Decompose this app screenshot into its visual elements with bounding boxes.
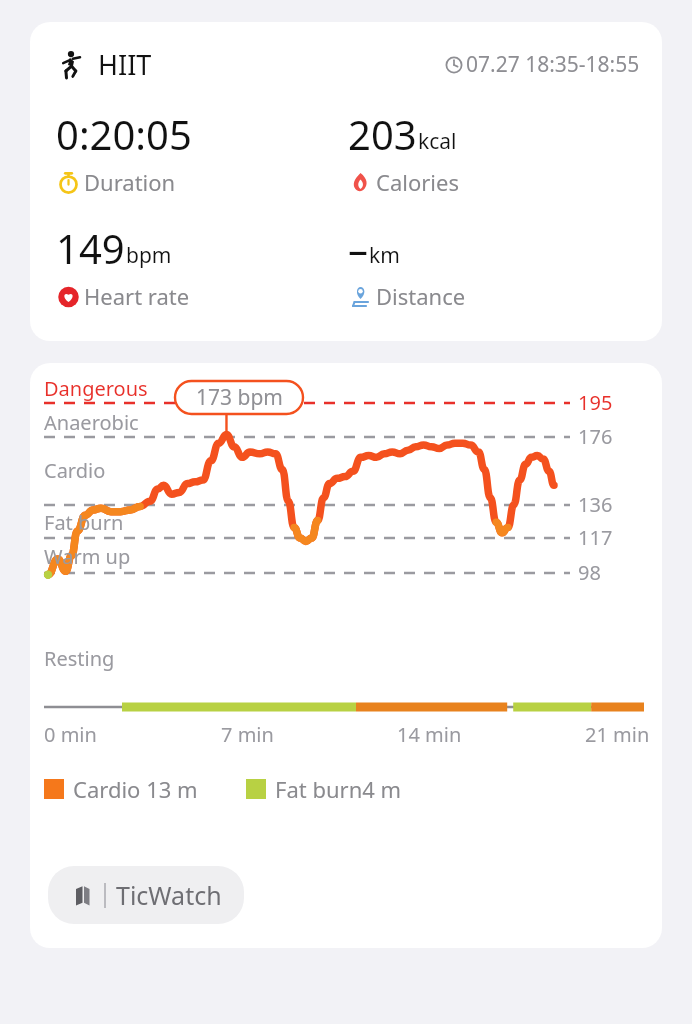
staticText: Calories — [376, 167, 459, 197]
staticText: 21 min — [585, 721, 650, 748]
staticText: Dangerous — [44, 375, 148, 402]
staticText: Distance — [376, 281, 466, 311]
staticText: 173 bpm — [196, 383, 283, 412]
staticText: 7 min — [221, 721, 274, 748]
staticText: kcal — [418, 127, 457, 156]
staticText: HIIT — [98, 46, 152, 83]
staticText: 195 — [578, 389, 613, 416]
staticText: Duration — [84, 167, 176, 197]
staticText: 0:20:05 — [56, 107, 192, 161]
button[interactable]: TicWatch — [48, 866, 244, 924]
staticText: – — [348, 221, 368, 275]
other: Workout type — [56, 50, 86, 80]
staticText: Anaerobic — [44, 409, 139, 436]
staticText: Fat burn — [44, 509, 124, 536]
staticText: 07.27 18:35-18:55 — [466, 50, 640, 79]
staticText: Fat burn4 m — [275, 774, 402, 804]
staticText: bpm — [126, 241, 172, 270]
staticText: 176 — [578, 423, 613, 450]
staticText: TicWatch — [116, 878, 222, 912]
staticText: 117 — [578, 524, 613, 551]
staticText: Heart rate — [84, 281, 190, 311]
staticText: 149 — [56, 221, 125, 275]
staticText: 0 min — [44, 721, 97, 748]
staticText: Cardio — [44, 457, 106, 484]
staticText: Warm up — [44, 543, 131, 570]
staticText: 136 — [578, 491, 613, 518]
staticText: 98 — [578, 559, 601, 586]
button[interactable]: Workout type — [30, 22, 662, 341]
staticText: Resting — [44, 645, 115, 672]
staticText: 14 min — [397, 721, 462, 748]
staticText: km — [369, 241, 400, 270]
staticText: 203 — [348, 107, 417, 161]
staticText: Cardio 13 m — [73, 774, 198, 804]
